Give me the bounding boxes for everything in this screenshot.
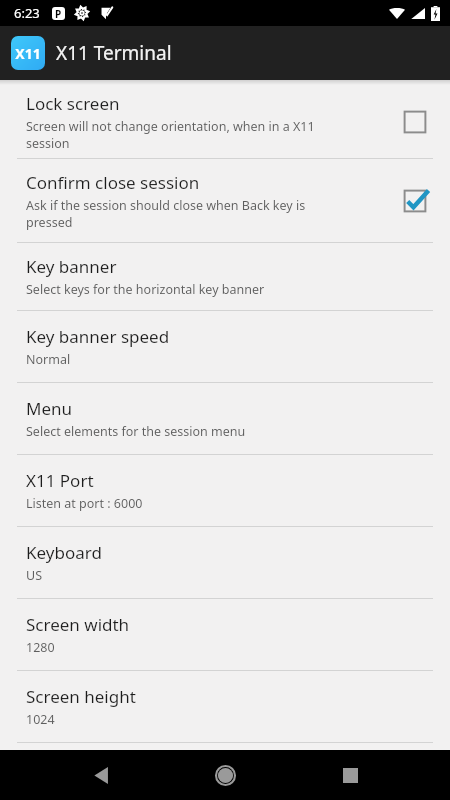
- staticText: Select elements for the session menu: [26, 423, 246, 440]
- staticText: Screen width: [26, 613, 130, 636]
- staticText: X11 Port: [26, 469, 94, 492]
- button[interactable]: Recent apps: [326, 751, 374, 799]
- staticText: P: [55, 7, 62, 20]
- button[interactable]: Lock screen: [0, 85, 450, 158]
- staticText: Key banner: [26, 255, 117, 278]
- staticText: 1280: [26, 639, 55, 656]
- staticText: 6:23: [14, 4, 40, 22]
- button[interactable]: Menu: [0, 383, 450, 454]
- button[interactable]: Key banner speed: [0, 311, 450, 382]
- button[interactable]: Confirm close session: [0, 159, 450, 242]
- staticText: X11: [15, 44, 41, 63]
- staticText: Key banner speed: [26, 325, 170, 348]
- staticText: Screen will not change orientation, when…: [26, 118, 315, 152]
- staticText: Confirm close session: [26, 171, 200, 194]
- staticText: Select keys for the horizontal key banne…: [26, 281, 265, 298]
- button[interactable]: X11 Port: [0, 455, 450, 526]
- staticText: Lock screen: [26, 92, 120, 115]
- button[interactable]: Back: [77, 751, 125, 799]
- button[interactable]: Checked: [398, 184, 432, 218]
- staticText: US: [26, 567, 43, 584]
- button[interactable]: Screen height: [0, 671, 450, 742]
- button[interactable]: Screen width: [0, 599, 450, 670]
- button[interactable]: Key banner: [0, 243, 450, 310]
- staticText: Ask if the session should close when Bac…: [26, 197, 306, 231]
- staticText: 1024: [26, 711, 55, 728]
- staticText: X11 Terminal: [56, 40, 172, 66]
- staticText: Normal: [26, 351, 71, 368]
- staticText: Screen height: [26, 685, 136, 708]
- button[interactable]: Keyboard: [0, 527, 450, 598]
- staticText: Keyboard: [26, 541, 102, 564]
- staticText: Listen at port : 6000: [26, 495, 143, 512]
- button[interactable]: Home: [201, 751, 249, 799]
- button[interactable]: Unchecked: [398, 105, 432, 139]
- staticText: Menu: [26, 397, 73, 420]
